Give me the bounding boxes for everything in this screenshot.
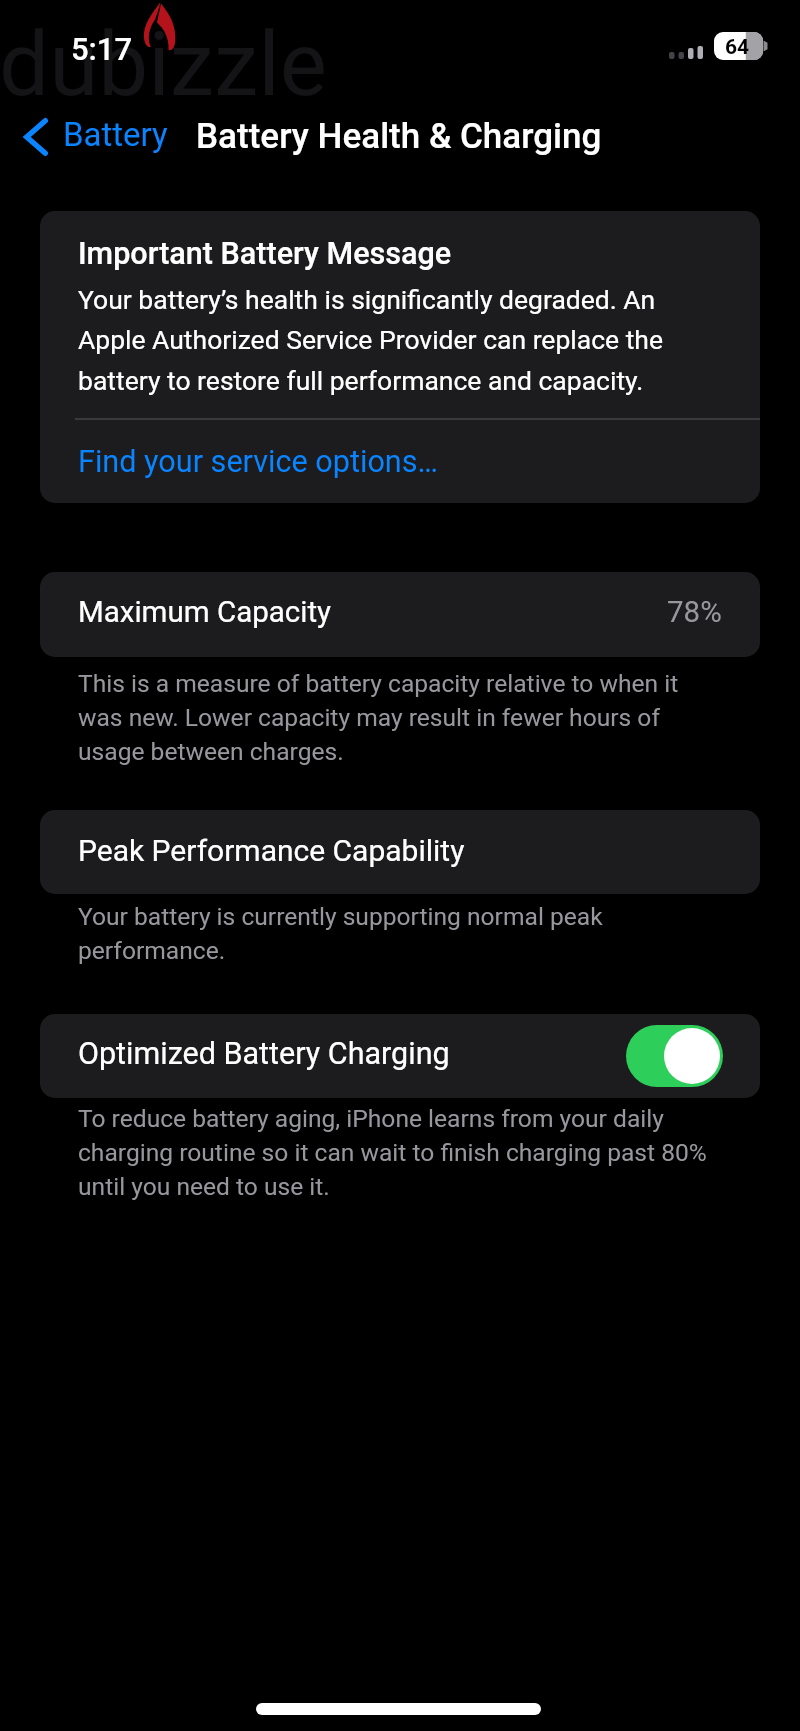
- staticText: Important Battery Message: [78, 236, 452, 272]
- staticText: dubizzle: [0, 12, 328, 116]
- staticText: Battery: [63, 115, 168, 154]
- button[interactable]: Peak Performance Capability: [40, 810, 760, 894]
- staticText: Battery Health & Charging: [196, 116, 602, 157]
- staticText: Peak Performance Capability: [78, 833, 465, 868]
- staticText: Your battery is currently supporting nor…: [78, 902, 658, 965]
- button[interactable]: Optimized Battery Charging, on: [626, 1025, 723, 1087]
- staticText: Find your service options…: [78, 444, 439, 480]
- staticText: 78%: [667, 595, 722, 630]
- staticText: 5:17: [71, 31, 133, 67]
- staticText: 64: [725, 35, 750, 60]
- button[interactable]: Back to Battery: [14, 109, 176, 165]
- staticText: Your battery’s health is significantly d…: [78, 284, 693, 397]
- button[interactable]: Maximum Capacity: [40, 572, 760, 657]
- staticText: To reduce battery aging, iPhone learns f…: [78, 1104, 718, 1201]
- staticText: Optimized Battery Charging: [78, 1036, 450, 1072]
- button[interactable]: Optimized Battery Charging: [40, 1014, 760, 1098]
- button[interactable]: Find your service options…: [40, 420, 760, 503]
- staticText: Maximum Capacity: [78, 595, 332, 630]
- staticText: This is a measure of battery capacity re…: [78, 669, 693, 766]
